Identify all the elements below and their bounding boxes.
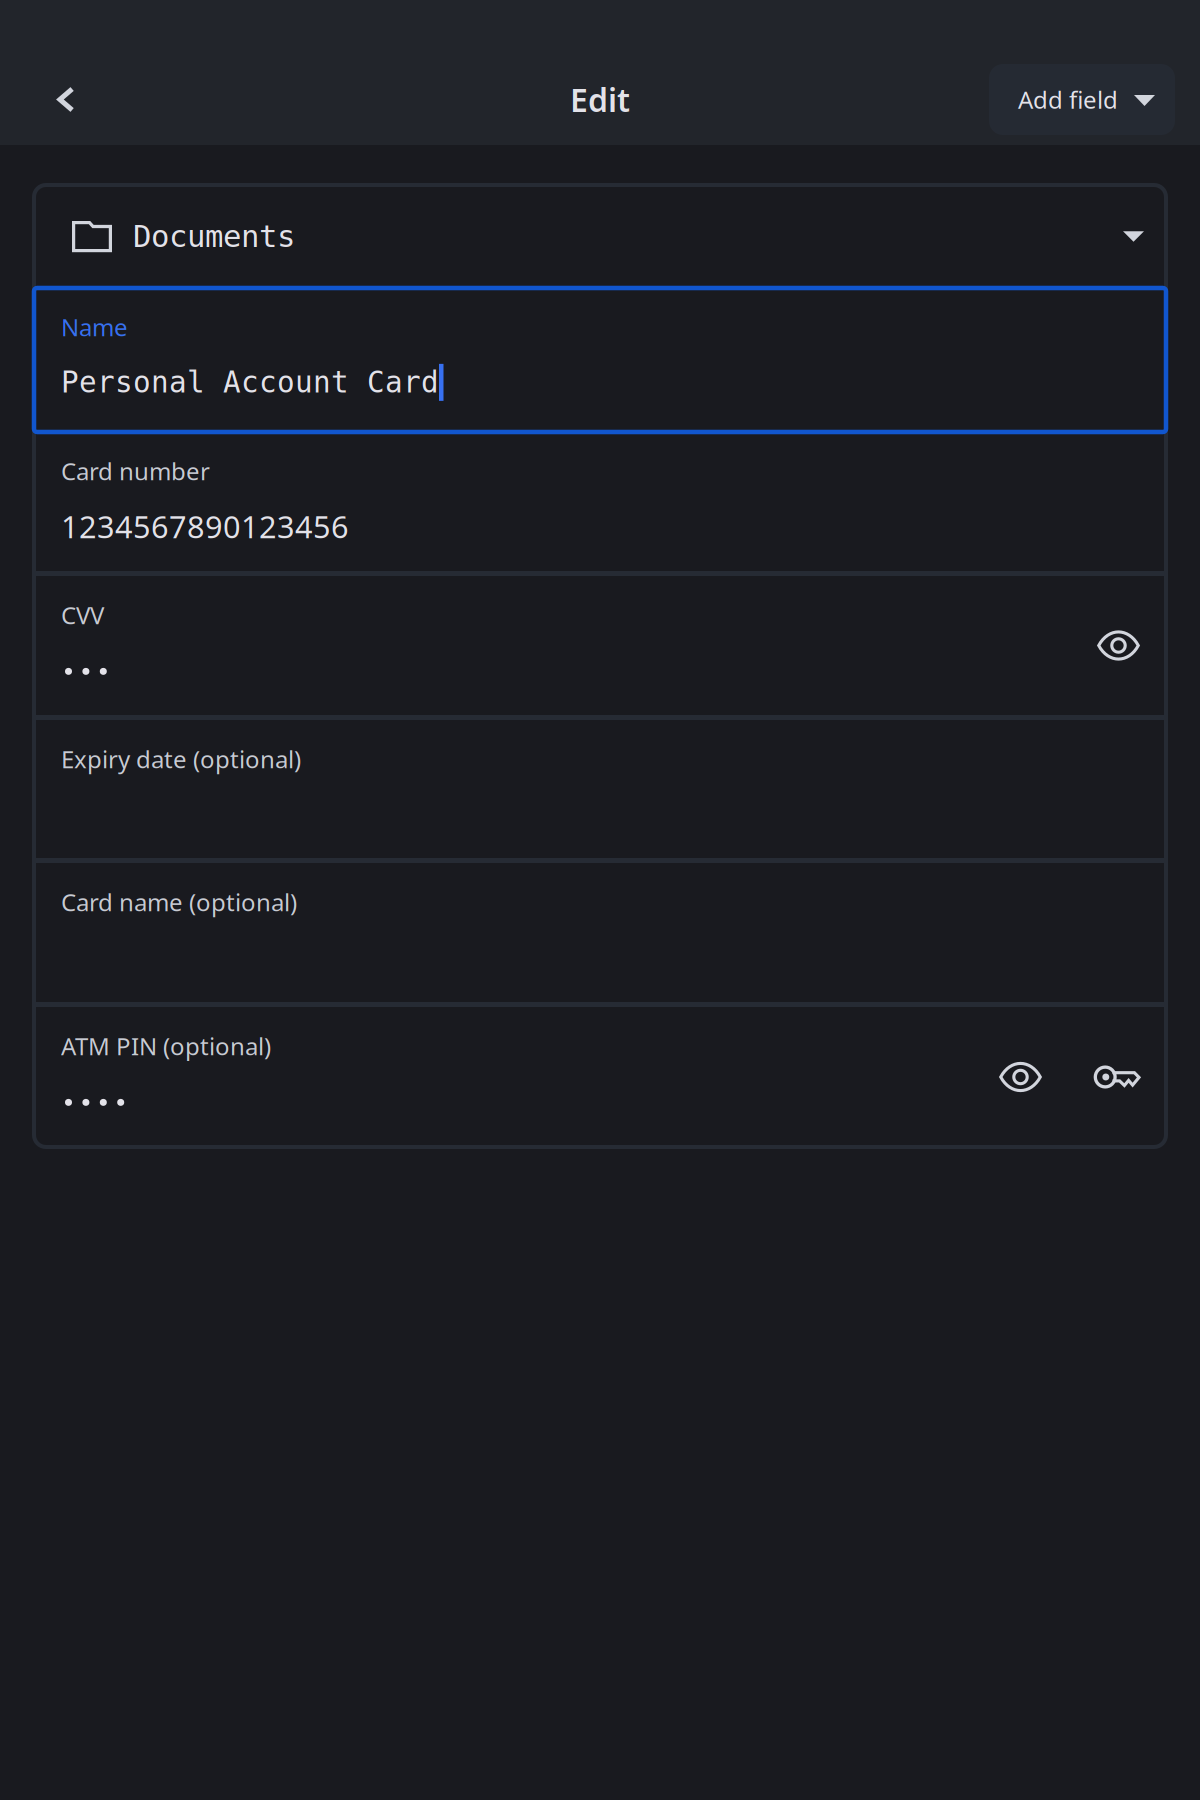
button[interactable]: Show CVV [1097,630,1140,661]
button[interactable]: Name [34,288,1166,432]
button[interactable]: Add field [989,64,1175,135]
staticText: Personal Account Card [61,366,439,399]
button[interactable]: Card name (optional) [34,863,1166,1002]
button[interactable]: Back [44,64,88,135]
staticText: Edit [570,78,630,121]
button[interactable]: Generate PIN [1094,1061,1140,1092]
staticText: ATM PIN (optional) [61,1030,271,1062]
staticText: Card number [61,455,210,487]
staticText: CVV [61,599,104,631]
button[interactable]: ATM PIN (optional) [34,1007,1166,1147]
staticText: Card name (optional) [61,886,297,918]
staticText: Name [61,311,128,343]
button[interactable]: Show ATM PIN [999,1061,1042,1092]
staticText: Add field [1018,84,1118,115]
staticText: Documents [133,219,295,254]
staticText: Expiry date (optional) [61,743,301,775]
button[interactable]: Card number [34,432,1166,571]
button[interactable]: CVV [34,576,1166,715]
staticText: 1234567890123456 [61,506,349,547]
button[interactable]: Expiry date (optional) [34,720,1166,858]
button[interactable]: Documents [34,185,1166,288]
